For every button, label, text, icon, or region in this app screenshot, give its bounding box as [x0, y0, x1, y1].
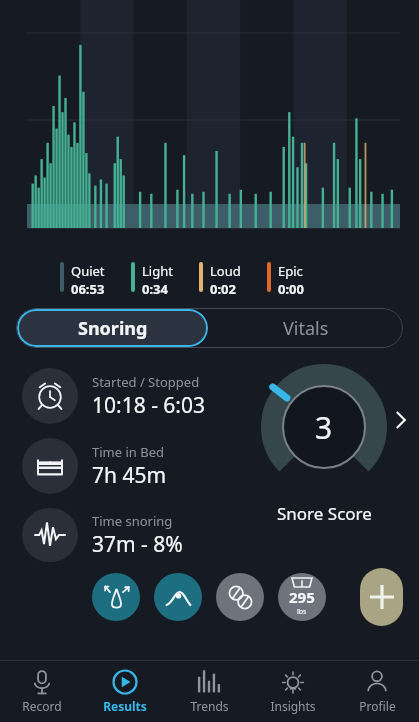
- staticText: Epic: [278, 262, 303, 280]
- staticText: Snore Score: [277, 502, 372, 525]
- staticText: 06:53: [71, 280, 105, 298]
- staticText: 7h 45m: [92, 461, 167, 490]
- button[interactable]: Profile: [335, 661, 419, 722]
- button[interactable]: Weight: [278, 573, 326, 621]
- staticText: Vitals: [283, 316, 329, 341]
- staticText: Loud: [210, 262, 241, 280]
- staticText: 0:34: [142, 280, 168, 298]
- button[interactable]: Insights: [251, 661, 335, 722]
- button[interactable]: Next: [387, 407, 413, 433]
- button[interactable]: Record: [0, 661, 83, 722]
- staticText: 295: [289, 587, 315, 607]
- button[interactable]: Medication: [216, 573, 264, 621]
- button[interactable]: Add: [360, 568, 403, 626]
- staticText: 10:18 - 6:03: [92, 391, 206, 420]
- button[interactable]: Results: [83, 661, 167, 722]
- staticText: Quiet: [71, 262, 105, 280]
- staticText: 0:00: [278, 280, 304, 298]
- staticText: Results: [103, 698, 147, 714]
- staticText: Profile: [359, 698, 396, 714]
- button[interactable]: Trends: [167, 661, 251, 722]
- button[interactable]: 3: [261, 364, 387, 490]
- staticText: Trends: [190, 698, 229, 714]
- staticText: 3: [315, 407, 333, 448]
- staticText: lbs: [297, 607, 307, 617]
- button[interactable]: Snoring: [17, 309, 208, 347]
- staticText: Insights: [270, 698, 316, 714]
- staticText: Started / Stopped: [92, 373, 200, 391]
- staticText: 37m - 8%: [92, 530, 183, 559]
- staticText: Light: [142, 262, 173, 280]
- button[interactable]: Vitals: [209, 308, 403, 348]
- staticText: Time snoring: [92, 512, 173, 530]
- button[interactable]: Time in Bed: [22, 438, 167, 494]
- staticText: 0:02: [210, 280, 236, 298]
- staticText: Snoring: [78, 316, 148, 341]
- button[interactable]: Time snoring: [22, 508, 183, 562]
- button[interactable]: Nasal: [92, 573, 140, 621]
- button[interactable]: Throat: [154, 573, 202, 621]
- button[interactable]: Started / Stopped: [22, 368, 206, 424]
- staticText: Record: [22, 698, 62, 714]
- staticText: Time in Bed: [92, 443, 164, 461]
